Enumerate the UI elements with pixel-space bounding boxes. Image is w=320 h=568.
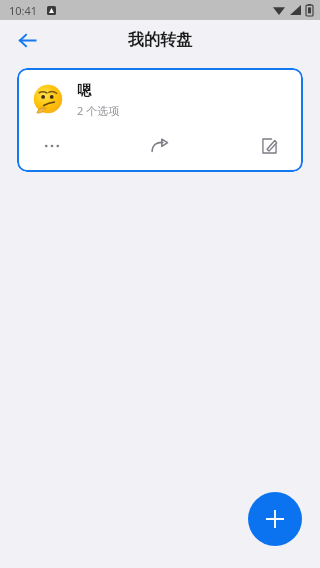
button[interactable]: Add — [248, 492, 302, 546]
button[interactable]: Back — [10, 23, 44, 57]
staticText: 10:41 — [9, 3, 38, 18]
staticText: 我的转盘 — [128, 30, 192, 50]
staticText: 2 个选项 — [77, 103, 120, 118]
button[interactable]: 嗯 — [17, 68, 303, 172]
button[interactable]: More options — [37, 131, 67, 161]
staticText: 嗯 — [77, 82, 91, 100]
button[interactable]: Share — [144, 130, 176, 162]
button[interactable]: Edit — [253, 130, 285, 162]
